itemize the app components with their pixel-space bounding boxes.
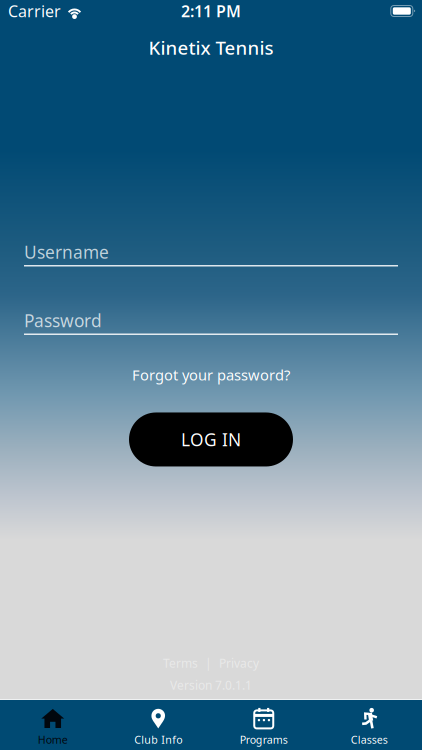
staticText: Privacy [219, 655, 259, 671]
staticText: | [205, 655, 212, 671]
staticText: Programs [240, 732, 288, 747]
staticText: LOG IN [181, 428, 241, 451]
button[interactable]: Terms [163, 655, 198, 671]
button[interactable]: LOG IN [129, 412, 293, 466]
staticText: Forgot your password? [132, 365, 290, 384]
staticText: Username [24, 240, 109, 263]
staticText: Carrier [8, 0, 61, 22]
staticText: 2:11 PM [181, 0, 241, 22]
staticText: Home [38, 732, 68, 747]
button[interactable]: Home [0, 703, 105, 747]
staticText: Version 7.0.1.1 [170, 677, 252, 693]
button[interactable]: Programs [211, 703, 316, 747]
button[interactable]: Club Info [105, 703, 211, 747]
button[interactable]: Privacy [219, 655, 259, 671]
staticText: Terms [163, 655, 198, 671]
button[interactable]: Classes [316, 703, 422, 747]
staticText: Password [24, 309, 102, 332]
staticText: Kinetix Tennis [148, 35, 273, 60]
staticText: Classes [351, 732, 388, 747]
staticText: Club Info [134, 732, 182, 747]
button[interactable]: Forgot your password? [122, 361, 300, 388]
